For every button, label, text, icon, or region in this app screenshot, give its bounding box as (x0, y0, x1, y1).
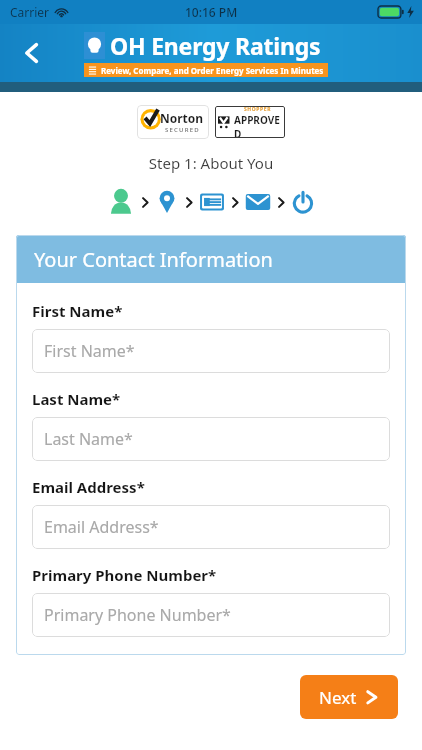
staticText: SHOPPER (244, 106, 272, 113)
staticText: Your Contact Information (34, 246, 273, 273)
button[interactable]: Email confirmation (245, 189, 271, 215)
staticText: Next (319, 686, 357, 709)
staticText: First Name* (44, 340, 135, 362)
staticText: Last Name* (44, 428, 133, 450)
button[interactable]: About You (107, 188, 135, 216)
button[interactable]: Plan details (199, 189, 225, 215)
button[interactable]: Back (10, 31, 54, 75)
button[interactable]: Last Name* (32, 417, 390, 461)
staticText: 10:16 PM (185, 4, 238, 20)
staticText: Norton (160, 110, 204, 126)
staticText: Primary Phone Number* (44, 604, 231, 626)
staticText: First Name* (32, 301, 123, 321)
button[interactable]: Primary Phone Number* (32, 593, 390, 637)
staticText: Last Name* (32, 389, 121, 409)
staticText: Primary Phone Number* (32, 565, 217, 585)
staticText: OH Energy Ratings (110, 30, 321, 61)
staticText: Carrier (10, 4, 50, 20)
button[interactable]: Next (300, 675, 398, 719)
button[interactable]: Email Address* (32, 505, 390, 549)
button[interactable]: Address (155, 190, 179, 214)
staticText: Email Address* (32, 477, 145, 497)
button[interactable]: First Name* (32, 329, 390, 373)
staticText: APPROVED (234, 113, 282, 138)
staticText: Step 1: About You (0, 153, 422, 173)
staticText: Review, Compare, and Order Energy Servic… (101, 65, 324, 76)
button[interactable]: Complete (291, 190, 315, 214)
staticText: SECURED (165, 126, 200, 134)
staticText: Email Address* (44, 516, 159, 538)
